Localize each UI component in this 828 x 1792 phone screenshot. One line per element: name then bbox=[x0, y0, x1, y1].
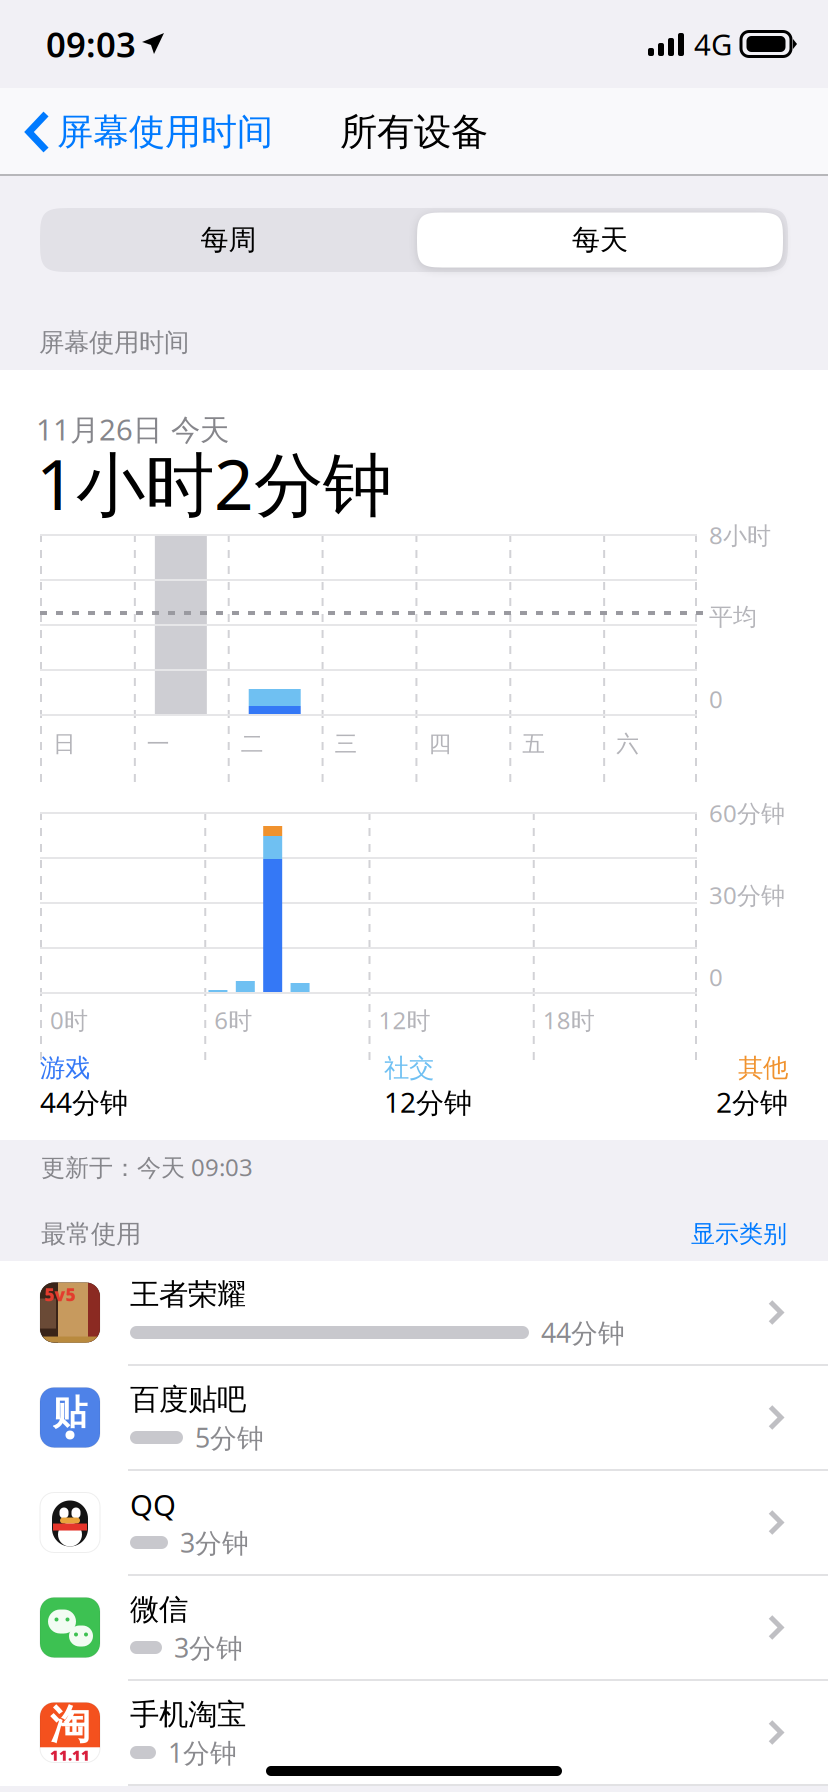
button[interactable]: 5v5 bbox=[0, 1261, 828, 1366]
button[interactable]: 每天 bbox=[417, 208, 788, 272]
button[interactable]: 显示类别 bbox=[691, 1219, 787, 1249]
staticText: 18时 bbox=[543, 1004, 595, 1036]
staticText: 44分钟 bbox=[541, 1315, 625, 1350]
staticText: 日 bbox=[53, 730, 76, 758]
staticText: 11.11 bbox=[50, 1745, 90, 1765]
staticText: 二 bbox=[241, 730, 264, 758]
button[interactable]: 每周 bbox=[40, 208, 417, 272]
staticText: 0 bbox=[709, 961, 723, 993]
staticText: 44分钟 bbox=[40, 1083, 128, 1121]
staticText: 1分钟 bbox=[168, 1735, 237, 1770]
staticText: 其他 bbox=[738, 1052, 788, 1083]
staticText: 四 bbox=[428, 730, 451, 758]
staticText: 三 bbox=[335, 730, 358, 758]
staticText: QQ bbox=[130, 1485, 176, 1524]
staticText: 每周 bbox=[200, 223, 256, 257]
staticText: 2分钟 bbox=[716, 1083, 788, 1121]
staticText: 百度贴吧 bbox=[130, 1381, 246, 1417]
staticText: 8小时 bbox=[709, 519, 771, 551]
staticText: 0时 bbox=[50, 1004, 88, 1036]
staticText: 6时 bbox=[214, 1004, 252, 1036]
staticText: 手机淘宝 bbox=[130, 1696, 246, 1732]
staticText: 淘 bbox=[50, 1700, 90, 1749]
staticText: 4G bbox=[694, 24, 732, 63]
staticText: 30分钟 bbox=[709, 879, 785, 911]
staticText: 5v5 bbox=[44, 1283, 75, 1306]
staticText: 游戏 bbox=[40, 1052, 90, 1083]
staticText: 3分钟 bbox=[180, 1525, 249, 1560]
button[interactable]: 贴 bbox=[0, 1366, 828, 1471]
staticText: 每天 bbox=[572, 223, 628, 257]
button[interactable]: QQ bbox=[0, 1471, 828, 1576]
staticText: 微信 bbox=[130, 1591, 188, 1627]
button[interactable]: 微信 bbox=[0, 1576, 828, 1681]
staticText: 五 bbox=[522, 730, 545, 758]
staticText: 5分钟 bbox=[195, 1420, 264, 1455]
staticText: 一 bbox=[147, 730, 170, 758]
staticText: 平均 bbox=[709, 602, 757, 632]
staticText: 社交 bbox=[384, 1052, 434, 1083]
staticText: 60分钟 bbox=[709, 797, 785, 829]
staticText: 六 bbox=[616, 730, 639, 758]
staticText: 09:03 bbox=[46, 21, 136, 67]
staticText: 12分钟 bbox=[384, 1083, 472, 1121]
staticText: 屏幕使用时间 bbox=[57, 110, 273, 154]
staticText: 更新于：今天 09:03 bbox=[41, 1151, 253, 1183]
staticText: 所有设备 bbox=[340, 109, 488, 155]
staticText: 屏幕使用时间 bbox=[39, 327, 189, 358]
staticText: 王者荣耀 bbox=[130, 1276, 246, 1312]
staticText: 贴 bbox=[52, 1391, 87, 1434]
staticText: 3分钟 bbox=[174, 1630, 243, 1665]
staticText: 1小时2分钟 bbox=[36, 437, 392, 529]
button[interactable]: 屏幕使用时间 bbox=[0, 88, 287, 176]
staticText: 0 bbox=[709, 683, 723, 715]
staticText: 显示类别 bbox=[691, 1219, 787, 1249]
staticText: 最常使用 bbox=[41, 1218, 141, 1249]
staticText: 11月26日 今天 bbox=[36, 409, 229, 448]
button[interactable]: 淘 bbox=[0, 1681, 828, 1786]
staticText: 12时 bbox=[378, 1004, 430, 1036]
